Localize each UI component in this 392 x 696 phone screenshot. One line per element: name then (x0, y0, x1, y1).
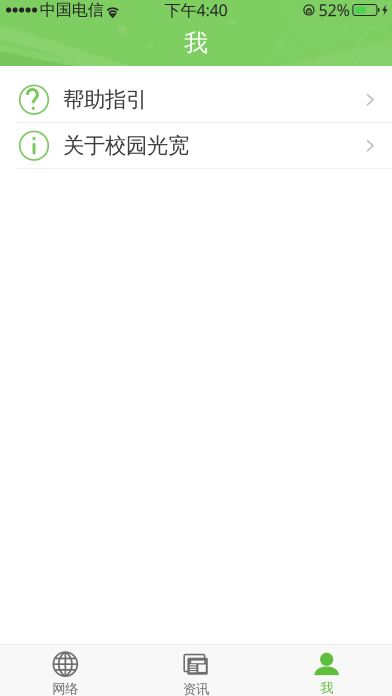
staticText: 网络 (52, 681, 78, 696)
staticText: 关于校园光宽 (63, 133, 189, 159)
button[interactable]: 我 (261, 645, 392, 696)
button[interactable]: 关于校园光宽 (0, 123, 392, 169)
staticText: 52% (318, 0, 349, 21)
button[interactable]: 帮助指引 (0, 77, 392, 123)
button[interactable]: 网络 (0, 645, 131, 696)
staticText: 下午4:40 (164, 0, 227, 21)
staticText: 我 (184, 28, 208, 58)
staticText: 资讯 (183, 681, 209, 696)
button[interactable]: 资讯 (131, 645, 261, 696)
staticText: 帮助指引 (63, 87, 147, 113)
staticText: 中国电信 (40, 0, 104, 20)
staticText: 我 (320, 680, 333, 696)
